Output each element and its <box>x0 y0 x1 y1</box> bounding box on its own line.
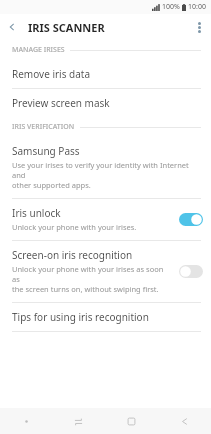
staticText: Samsung Pass <box>12 144 80 158</box>
button[interactable]: Home <box>105 408 158 434</box>
staticText: MANAGE IRISES <box>12 45 65 55</box>
button[interactable]: Back <box>158 408 211 434</box>
button[interactable]: More options <box>187 15 211 39</box>
button[interactable]: Back <box>0 15 24 39</box>
staticText: IRIS VERIFICATION <box>12 122 75 132</box>
staticText: Unlock your phone with your irises. <box>12 222 137 232</box>
button[interactable]: Preview screen mask <box>0 89 211 117</box>
button[interactable]: Off <box>179 265 203 278</box>
button[interactable]: Iris unlock <box>0 199 211 240</box>
staticText: 10:00 <box>188 2 206 12</box>
button[interactable]: Samsung Pass <box>0 137 211 198</box>
staticText: Tips for using iris recognition <box>12 310 149 324</box>
button[interactable]: Screen-on iris recognition <box>0 241 211 302</box>
staticText: Unlock your phone with your irises as so… <box>12 264 173 294</box>
staticText: Iris unlock <box>12 206 61 220</box>
staticText: IRIS SCANNER <box>28 20 105 35</box>
button[interactable]: Remove iris data <box>0 60 211 88</box>
button[interactable]: On <box>179 213 203 226</box>
staticText: 100% <box>162 2 180 12</box>
staticText: Preview screen mask <box>12 96 110 110</box>
button[interactable]: Tips for using iris recognition <box>0 303 211 331</box>
staticText: Use your irises to verify your identity … <box>12 160 201 190</box>
staticText: Screen-on iris recognition <box>12 248 133 262</box>
button[interactable]: Recents <box>52 408 105 434</box>
staticText: Remove iris data <box>12 67 91 81</box>
